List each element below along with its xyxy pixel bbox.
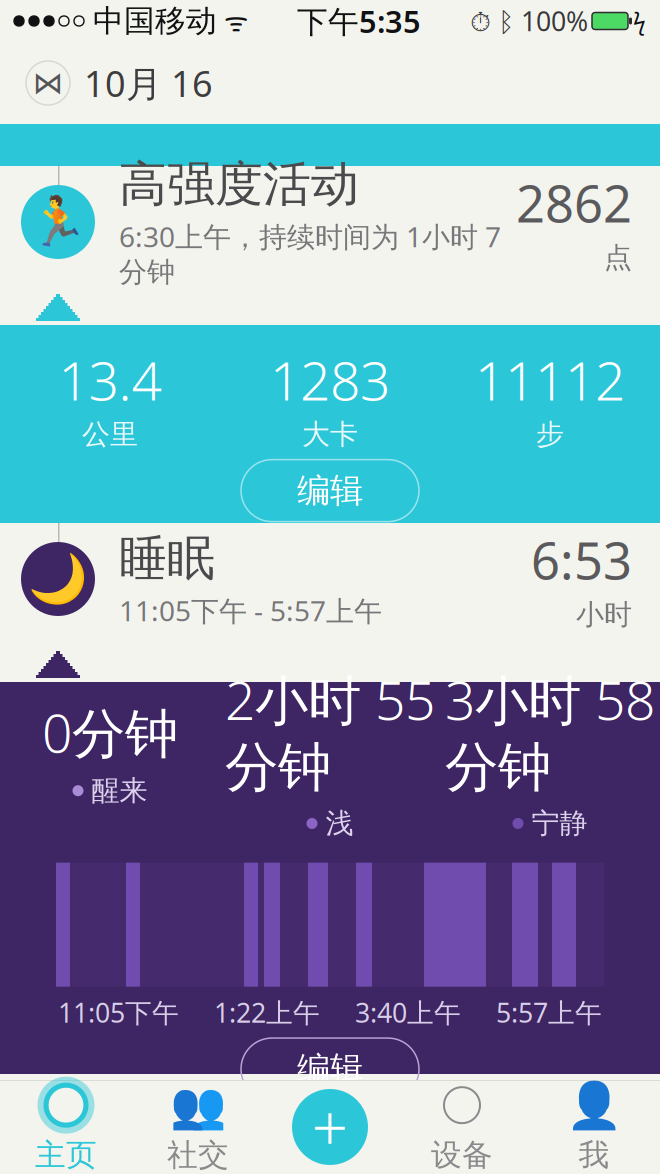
staticText: 3:40上午: [355, 995, 461, 1030]
staticText: 下午5:35: [297, 1, 421, 41]
staticText: 社交: [167, 1136, 229, 1174]
staticText: 🏃: [28, 195, 88, 249]
staticText: 6:30上午，持续时间为 1小时 7分钟: [119, 218, 501, 289]
staticText: 2小时 55分钟: [225, 664, 435, 800]
staticText: 浅: [325, 806, 353, 841]
staticText: 编辑: [297, 470, 363, 511]
staticText: 主页: [35, 1136, 97, 1174]
button[interactable]: Calendar: [26, 61, 70, 105]
staticText: 10月 16: [84, 59, 213, 107]
staticText: 1283: [270, 344, 390, 415]
button[interactable]: Add: [264, 1080, 396, 1174]
staticText: 中国移动: [84, 2, 217, 40]
staticText: 11:05下午 - 5:57上午: [119, 592, 382, 629]
staticText: ⏱ ᛒ 100%: [470, 3, 588, 39]
staticText: 小时: [576, 597, 632, 632]
staticText: ᯤ: [217, 3, 248, 39]
staticText: 设备: [431, 1136, 493, 1174]
staticText: 步: [536, 417, 564, 452]
staticText: +: [311, 1084, 348, 1169]
staticText: 点: [604, 240, 632, 275]
staticText: 13.4: [58, 344, 161, 415]
staticText: 0分钟: [42, 697, 178, 767]
staticText: 宁静: [531, 806, 587, 841]
staticText: 3小时 58分钟: [445, 664, 655, 800]
button[interactable]: 编辑: [241, 1038, 419, 1100]
button[interactable]: 编辑: [241, 460, 419, 522]
staticText: 👥: [170, 1079, 226, 1131]
staticText: 编辑: [297, 1049, 363, 1089]
staticText: 睡眠: [119, 529, 215, 588]
staticText: 公里: [82, 417, 138, 452]
staticText: 5:57上午: [496, 995, 602, 1030]
staticText: 大卡: [302, 417, 358, 452]
staticText: 1:22上午: [214, 995, 320, 1030]
staticText: 11112: [475, 344, 625, 415]
staticText: 11:05下午: [58, 995, 179, 1030]
staticText: ϟ: [633, 6, 646, 36]
staticText: 醒来: [91, 773, 147, 808]
button[interactable]: 👥: [132, 1080, 264, 1174]
staticText: 🌙: [28, 552, 88, 606]
button[interactable]: 主页: [0, 1080, 132, 1174]
button[interactable]: 👤: [528, 1080, 660, 1174]
button[interactable]: 设备: [396, 1080, 528, 1174]
staticText: 我: [578, 1136, 609, 1174]
staticText: 高强度活动: [119, 155, 359, 214]
staticText: ⋈: [32, 66, 63, 100]
staticText: 👤: [566, 1079, 622, 1131]
staticText: 2862: [516, 169, 632, 236]
staticText: 6:53: [531, 526, 632, 593]
